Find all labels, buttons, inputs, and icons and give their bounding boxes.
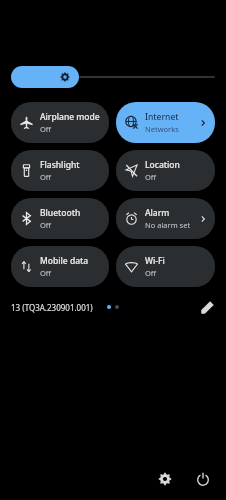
staticText: Off bbox=[40, 124, 52, 134]
staticText: Wi-Fi bbox=[145, 255, 165, 267]
staticText: Off bbox=[145, 172, 157, 182]
staticText: Bluetooth bbox=[40, 207, 81, 219]
staticText: 13 (TQ3A.230901.001) bbox=[11, 302, 93, 313]
staticText: Mobile data bbox=[40, 255, 89, 267]
button[interactable]: Flashlight bbox=[11, 150, 109, 191]
staticText: Internet bbox=[145, 111, 179, 123]
button[interactable]: Wi-Fi bbox=[116, 246, 215, 287]
button[interactable]: Mobile data bbox=[11, 246, 109, 287]
staticText: Off bbox=[40, 220, 52, 230]
button[interactable]: Airplane mode bbox=[11, 102, 109, 143]
button[interactable]: Power bbox=[190, 466, 216, 492]
staticText: Alarm bbox=[145, 207, 170, 219]
staticText: Networks unavail bbox=[145, 124, 198, 134]
staticText: Airplane mode bbox=[40, 111, 100, 123]
button[interactable]: Alarm bbox=[116, 198, 215, 239]
button[interactable]: Internet bbox=[116, 102, 215, 143]
button[interactable]: Brightness bbox=[11, 66, 215, 88]
button[interactable]: Settings bbox=[152, 466, 178, 492]
staticText: No alarm set bbox=[145, 220, 191, 230]
staticText: Flashlight bbox=[40, 159, 80, 171]
staticText: Off bbox=[145, 268, 157, 278]
button[interactable]: Edit tiles bbox=[196, 296, 218, 318]
staticText: Location bbox=[145, 159, 180, 171]
staticText: Off bbox=[40, 268, 52, 278]
staticText: Off bbox=[40, 172, 52, 182]
button[interactable]: Location bbox=[116, 150, 215, 191]
button[interactable]: Bluetooth bbox=[11, 198, 109, 239]
